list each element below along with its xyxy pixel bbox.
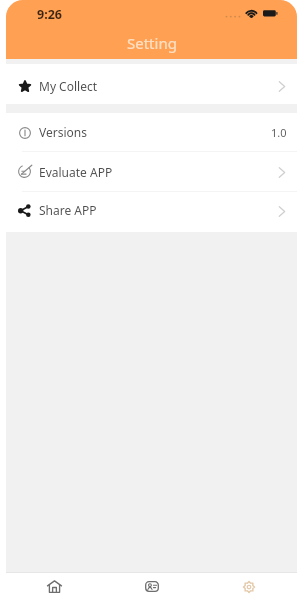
staticText: Evaluate APP	[39, 164, 113, 180]
button[interactable]: Versions	[6, 113, 297, 151]
staticText: 1.0	[271, 125, 287, 140]
staticText: Versions	[39, 124, 87, 140]
button[interactable]: Settings	[200, 573, 297, 594]
button[interactable]: Contacts	[103, 573, 200, 594]
button[interactable]: Share APP	[6, 192, 297, 228]
staticText: 9:26	[37, 6, 62, 23]
staticText: My Collect	[39, 78, 98, 94]
staticText: Share APP	[39, 202, 97, 218]
button[interactable]: My Collect	[6, 67, 297, 104]
staticText: Setting	[127, 33, 177, 53]
button[interactable]: Home	[6, 573, 103, 594]
button[interactable]: Evaluate APP	[6, 152, 297, 191]
